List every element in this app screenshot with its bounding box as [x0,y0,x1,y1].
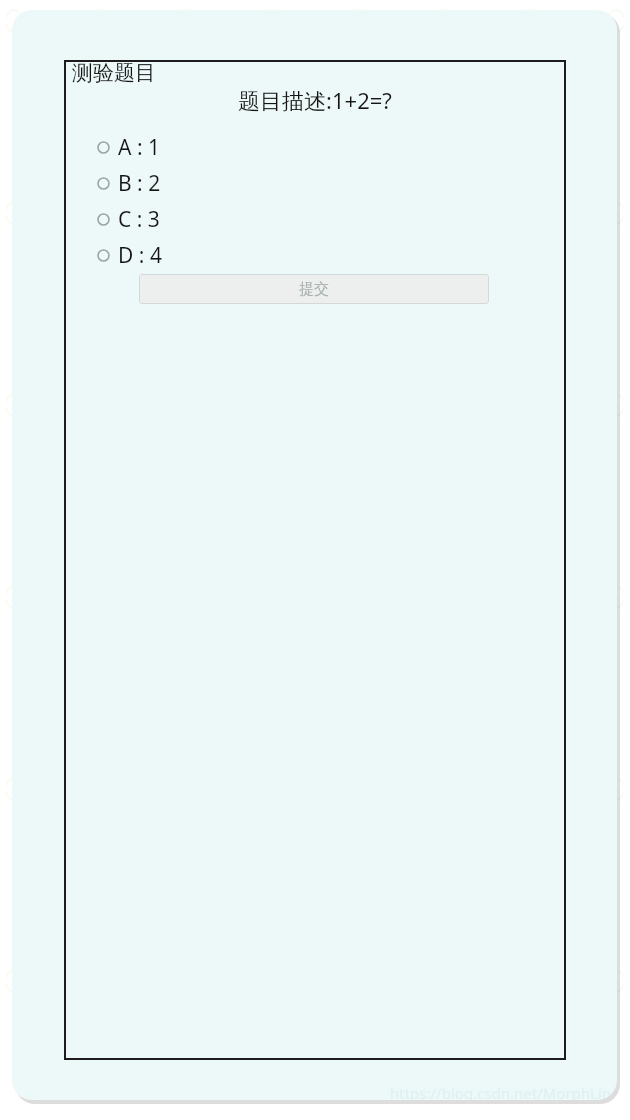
staticText: B : 2 [118,169,161,198]
staticText: 测验题目 [72,60,156,86]
button[interactable]: A : 1 [97,132,217,162]
staticText: https://blog.csdn.net/MorphLing [390,1083,617,1100]
staticText: C : 3 [118,205,160,234]
staticText: A : 1 [118,133,160,162]
button[interactable]: D : 4 [97,240,217,270]
button[interactable]: 提交 [139,274,489,304]
staticText: D : 4 [118,241,162,270]
button[interactable]: C : 3 [97,204,217,234]
staticText: 提交 [299,280,329,299]
button[interactable]: B : 2 [97,168,217,198]
staticText: 题目描述:1+2=? [238,85,392,115]
